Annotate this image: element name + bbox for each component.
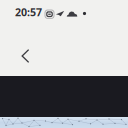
staticText: 20:57	[15, 5, 42, 19]
button[interactable]: Back	[7, 38, 43, 74]
